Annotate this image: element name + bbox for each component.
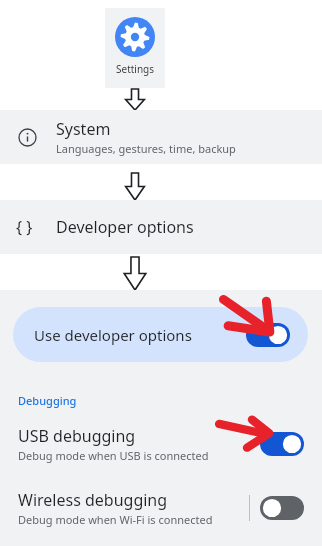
button[interactable]: { } xyxy=(0,200,322,254)
staticText: Settings xyxy=(116,62,155,76)
staticText: Developer options xyxy=(56,216,194,238)
staticText: Wireless debugging xyxy=(18,489,168,511)
staticText: USB debugging xyxy=(18,425,136,447)
button[interactable]: USB debugging xyxy=(0,418,322,470)
button[interactable]: Use developer options xyxy=(13,307,308,362)
button[interactable]: Settings app xyxy=(105,8,165,88)
staticText: Debug mode when Wi-Fi is connected xyxy=(18,512,213,527)
staticText: Languages, gestures, time, backup xyxy=(56,141,236,156)
staticText: { } xyxy=(16,216,33,238)
button[interactable]: System xyxy=(0,110,322,164)
staticText: Debugging xyxy=(18,393,77,408)
staticText: Use developer options xyxy=(34,325,192,345)
staticText: System xyxy=(56,118,111,140)
button[interactable]: Wireless debugging xyxy=(0,482,322,534)
staticText: Debug mode when USB is connected xyxy=(18,448,209,463)
